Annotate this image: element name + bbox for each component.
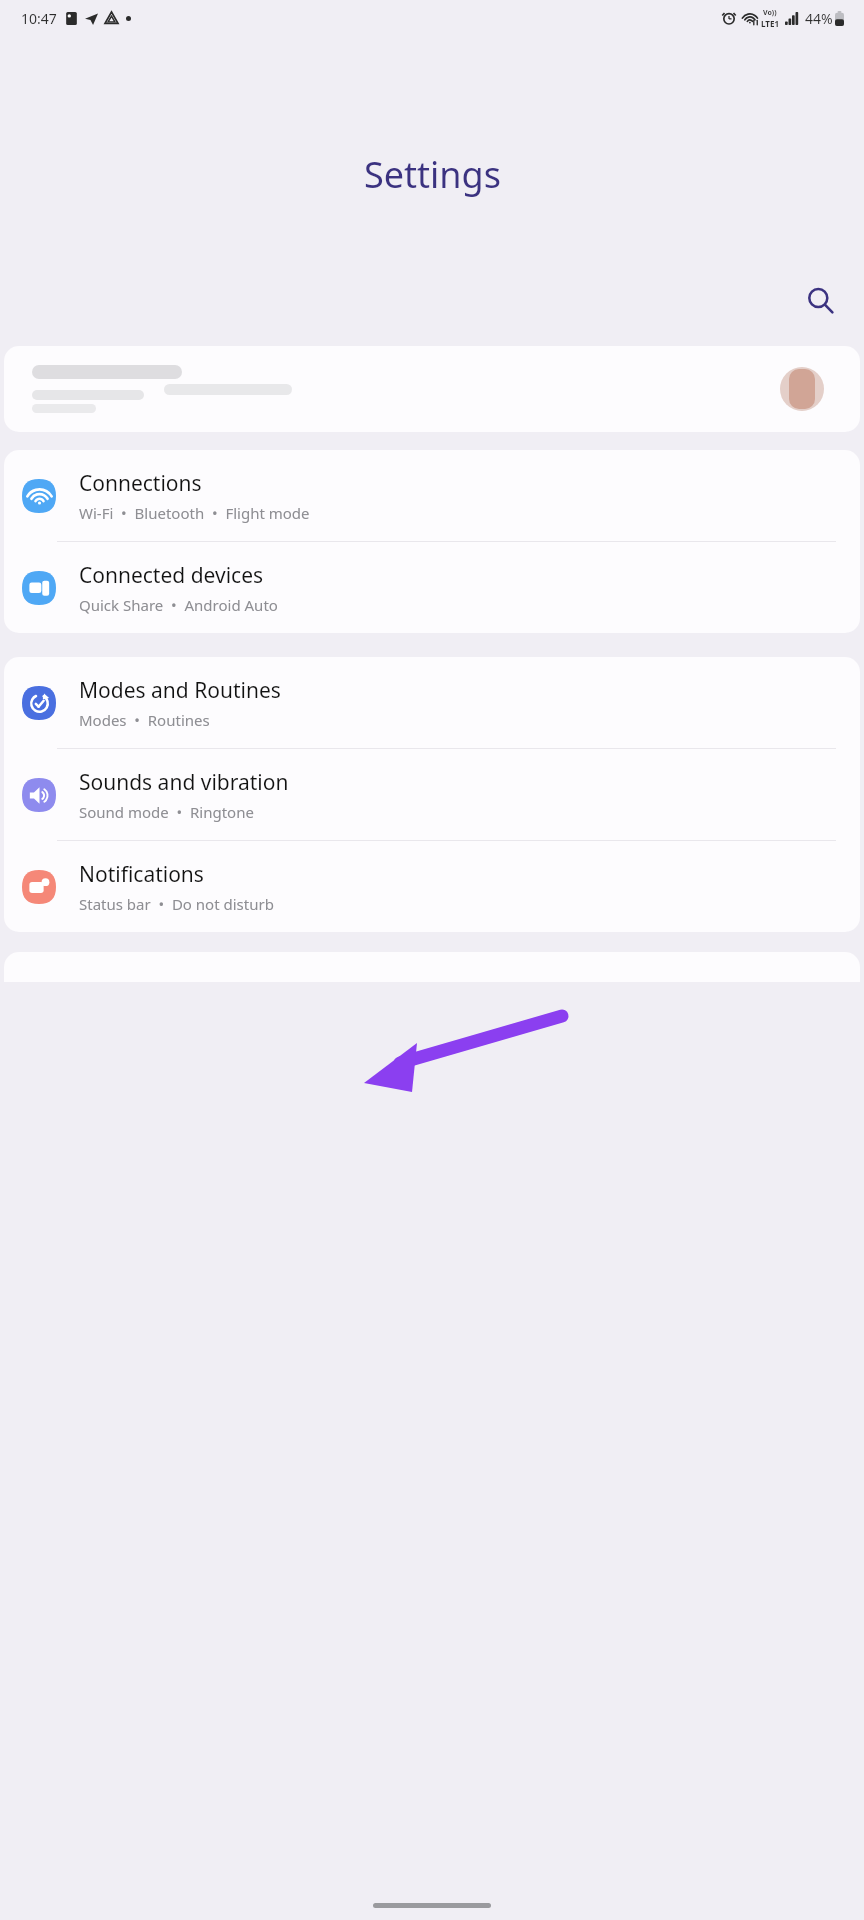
staticText: Vo)) [763,8,777,18]
staticText: Sound mode • Ringtone [79,802,254,822]
staticText: Notifications [79,860,204,889]
staticText: Wi-Fi • Bluetooth • Flight mode [79,503,310,523]
button[interactable]: Connected devices [4,542,860,633]
staticText: Modes • Routines [79,710,210,730]
staticText: 10:47 [21,9,57,28]
staticText: Modes and Routines [79,676,281,705]
staticText: Connected devices [79,561,264,590]
button[interactable]: Connections [4,450,860,541]
staticText: Quick Share • Android Auto [79,595,278,615]
button[interactable]: Sounds and vibration [4,749,860,840]
staticText: 44% [805,9,833,28]
button[interactable]: Modes and Routines [4,657,860,748]
staticText: Connections [79,469,202,498]
button[interactable]: Search settings [800,280,842,322]
staticText: LTE1 [761,18,779,29]
staticText: Sounds and vibration [79,768,289,797]
button[interactable]: Samsung account profile [4,346,860,432]
staticText: Status bar • Do not disturb [79,894,274,914]
button[interactable]: Notifications [4,841,860,932]
staticText: Settings [364,150,501,199]
